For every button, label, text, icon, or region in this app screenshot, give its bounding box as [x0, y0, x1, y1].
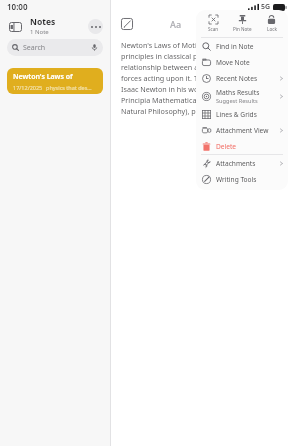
staticText: Lock	[267, 26, 277, 32]
staticText: 17/12/2025	[13, 84, 43, 91]
staticText: 5G	[261, 2, 271, 12]
button[interactable]: Checklist	[201, 16, 217, 32]
staticText: Find in Note	[216, 42, 254, 51]
staticText: physics that des…	[46, 84, 92, 91]
staticText: Principia Mathematica (Mathematic	[121, 95, 241, 105]
button[interactable]: Move Note	[196, 54, 288, 70]
staticText: Attachments	[216, 159, 256, 168]
staticText: principles in classical physics that	[121, 51, 234, 61]
staticText: Search	[23, 43, 91, 53]
staticText: forces acting upon it. They were fir	[121, 73, 238, 83]
staticText: Lines & Grids	[216, 110, 257, 119]
button[interactable]: Pin Note	[228, 10, 257, 37]
button[interactable]: Format	[165, 16, 187, 32]
staticText: Recent Notes	[216, 74, 258, 83]
button[interactable]: Writing Tools	[196, 171, 288, 187]
staticText: Scan	[208, 26, 219, 32]
staticText: Pin Note	[233, 26, 252, 32]
button[interactable]: Lines & Grids	[196, 106, 288, 122]
staticText: Isaac Newton in his work Philosoph	[121, 84, 241, 94]
button[interactable]: Maths Results	[196, 86, 288, 106]
staticText: 10:00	[7, 1, 28, 12]
staticText: Attachment View	[216, 126, 269, 135]
button[interactable]: Toggle sidebar	[7, 18, 24, 35]
button[interactable]: Lock	[257, 10, 286, 37]
staticText: Newton's Laws of Motio…	[13, 72, 97, 82]
button[interactable]: More options	[88, 19, 103, 34]
staticText: Aa	[170, 18, 182, 30]
button[interactable]: Attachments	[196, 155, 288, 171]
staticText: Suggest Results	[216, 97, 258, 105]
staticText: Move Note	[216, 58, 250, 67]
staticText: Notes	[30, 16, 56, 28]
button[interactable]: Search	[7, 39, 103, 56]
staticText: Natural Philosophy), published in 16	[121, 106, 243, 116]
button[interactable]: Recent Notes	[196, 70, 288, 86]
button[interactable]: New note	[119, 16, 135, 32]
staticText: relationship between an object and	[121, 62, 240, 72]
staticText: Newton's Laws of Motion are three	[121, 40, 239, 50]
button[interactable]: Delete	[196, 138, 288, 154]
button[interactable]: Newton's Laws of Motio…	[7, 68, 103, 94]
button[interactable]: Attachment View	[196, 122, 288, 138]
staticText: Maths Results	[216, 88, 260, 97]
staticText: 1 Note	[30, 28, 49, 36]
staticText: Writing Tools	[216, 175, 257, 184]
staticText: Delete	[216, 142, 237, 151]
button[interactable]: Scan	[198, 10, 228, 37]
button[interactable]: Find in Note	[196, 38, 288, 54]
